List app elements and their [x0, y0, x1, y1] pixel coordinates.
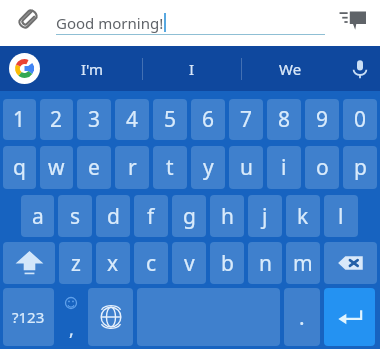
staticText: 2 [50, 105, 63, 134]
staticText: 1 [13, 105, 26, 134]
staticText: p [354, 153, 367, 182]
staticText: t [166, 153, 174, 182]
staticText: x [107, 249, 119, 278]
button[interactable]: m [286, 242, 320, 284]
staticText: k [297, 202, 309, 231]
button[interactable]: Switch keyboard language [88, 288, 133, 346]
staticText: 7 [240, 105, 253, 134]
button[interactable]: 8 [267, 99, 301, 140]
button[interactable]: r [115, 146, 149, 189]
button[interactable]: Voice input [340, 46, 380, 91]
staticText: z [71, 249, 81, 278]
button[interactable]: j [248, 195, 282, 237]
button[interactable]: I [142, 46, 241, 91]
button[interactable]: Send message [339, 5, 366, 32]
staticText: y [203, 153, 214, 182]
staticText: ?123 [12, 307, 45, 327]
staticText: d [107, 202, 120, 231]
button[interactable]: x [96, 242, 130, 284]
button[interactable]: n [248, 242, 282, 284]
button[interactable]: e [77, 146, 111, 189]
staticText: n [259, 249, 272, 278]
button[interactable]: 1 [3, 99, 36, 140]
staticText: c [146, 249, 157, 278]
staticText: w [48, 153, 65, 182]
button[interactable]: f [134, 195, 168, 237]
staticText: i [281, 153, 287, 182]
button[interactable]: 2 [40, 99, 73, 140]
staticText: f [147, 202, 155, 231]
staticText: 9 [316, 105, 329, 134]
button[interactable]: a [21, 195, 54, 237]
staticText: q [13, 153, 26, 182]
button[interactable]: u [229, 146, 263, 189]
button[interactable]: 5 [153, 99, 187, 140]
staticText: b [221, 249, 234, 278]
button[interactable]: l [324, 195, 358, 237]
button[interactable]: ?123 [3, 288, 54, 346]
staticText: g [183, 202, 196, 231]
staticText: 3 [88, 105, 101, 134]
button[interactable]: c [134, 242, 168, 284]
button[interactable]: Enter [324, 288, 375, 346]
button[interactable]: Comma, emoji [58, 288, 84, 346]
button[interactable]: y [191, 146, 225, 189]
staticText: 4 [126, 105, 139, 134]
staticText: r [128, 153, 137, 182]
button[interactable]: I'm [42, 46, 142, 91]
staticText: I'm [81, 59, 104, 79]
button[interactable]: Backspace [324, 242, 377, 284]
staticText: Good morning! [56, 13, 164, 33]
button[interactable]: k [286, 195, 320, 237]
staticText: e [88, 153, 100, 182]
staticText: s [70, 202, 81, 231]
staticText: . [299, 303, 305, 332]
button[interactable]: q [3, 146, 36, 189]
staticText: 0 [354, 105, 367, 134]
staticText: m [293, 249, 313, 278]
button[interactable]: t [153, 146, 187, 189]
button[interactable]: 7 [229, 99, 263, 140]
staticText: o [316, 153, 329, 182]
button[interactable]: b [210, 242, 244, 284]
staticText: h [221, 202, 234, 231]
button[interactable]: 6 [191, 99, 225, 140]
staticText: j [262, 202, 268, 231]
button[interactable]: Google [0, 46, 48, 91]
button[interactable]: p [343, 146, 377, 189]
button[interactable]: i [267, 146, 301, 189]
button[interactable]: w [40, 146, 73, 189]
button[interactable]: s [58, 195, 92, 237]
staticText: 6 [202, 105, 215, 134]
button[interactable]: h [210, 195, 244, 237]
button[interactable]: Attach file [13, 4, 43, 34]
button[interactable]: 0 [343, 99, 377, 140]
staticText: 8 [278, 105, 291, 134]
staticText: u [240, 153, 253, 182]
button[interactable]: d [96, 195, 130, 237]
button[interactable]: 3 [77, 99, 111, 140]
staticText: I [189, 59, 195, 79]
button[interactable]: o [305, 146, 339, 189]
staticText: a [32, 202, 44, 231]
button[interactable]: z [59, 242, 92, 284]
button[interactable]: We [241, 46, 340, 91]
button[interactable]: g [172, 195, 206, 237]
button[interactable]: . [284, 288, 320, 346]
staticText: 5 [164, 105, 177, 134]
button[interactable]: Shift [3, 242, 55, 284]
staticText: l [338, 202, 344, 231]
staticText: v [184, 249, 195, 278]
staticText: We [279, 59, 302, 79]
button[interactable]: 4 [115, 99, 149, 140]
button[interactable]: 9 [305, 99, 339, 140]
button[interactable]: v [172, 242, 206, 284]
staticText: , [69, 317, 74, 342]
